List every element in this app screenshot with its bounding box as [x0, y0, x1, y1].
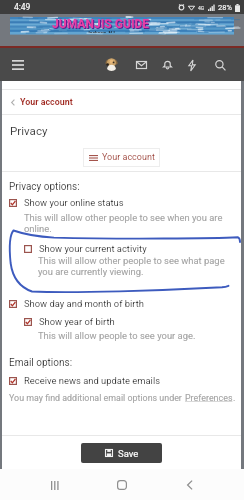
- staticText: 4:49: [14, 2, 31, 12]
- staticText: JUMANJIS GUIDE: [52, 17, 150, 31]
- staticText: Receive news and update emails: [24, 375, 161, 386]
- staticText: Save: [118, 448, 139, 459]
- staticText: This will allow other people to see what…: [38, 255, 231, 277]
- button[interactable]: Back: [177, 472, 203, 498]
- button[interactable]: Recents: [42, 472, 68, 498]
- staticText: Jackson, NJ: [87, 30, 115, 33]
- button[interactable]: Search: [211, 56, 229, 74]
- button[interactable]: Your account: [2, 90, 241, 114]
- button[interactable]: Notifications: [158, 56, 176, 74]
- staticText: Show your current activity: [39, 243, 147, 254]
- button[interactable]: Menu: [7, 54, 29, 76]
- staticText: Your account: [20, 97, 73, 107]
- staticText: JUMANJIS GUIDE: [53, 18, 151, 32]
- staticText: Your account: [102, 152, 155, 163]
- staticText: Show day and month of birth: [24, 298, 145, 309]
- staticText: Privacy: [10, 124, 48, 138]
- button[interactable]: Save: [81, 443, 162, 463]
- staticText: 4G: [198, 5, 205, 11]
- button[interactable]: Messages: [132, 56, 150, 74]
- button[interactable]: Your account: [83, 148, 160, 167]
- staticText: Preferences: [185, 393, 233, 403]
- button[interactable]: Profile: [105, 58, 118, 71]
- staticText: .: [233, 393, 236, 403]
- staticText: You may find additional email options un…: [9, 393, 185, 403]
- staticText: 28%: [218, 3, 232, 12]
- staticText: This will allow people to see your age.: [38, 330, 196, 341]
- staticText: Show year of birth: [39, 316, 115, 327]
- button[interactable]: Show your current activity: [2, 242, 241, 255]
- button[interactable]: Receive news and update emails: [2, 374, 241, 387]
- staticText: Privacy options:: [9, 181, 80, 193]
- staticText: Show your online status: [24, 197, 124, 208]
- button[interactable]: Show year of birth: [2, 315, 241, 328]
- staticText: Email options:: [9, 357, 73, 369]
- staticText: This will allow other people to see when…: [24, 212, 233, 234]
- button[interactable]: Show day and month of birth: [2, 297, 241, 310]
- button[interactable]: Activity: [183, 56, 201, 74]
- button[interactable]: Home: [109, 472, 135, 498]
- button[interactable]: Show your online status: [2, 196, 241, 209]
